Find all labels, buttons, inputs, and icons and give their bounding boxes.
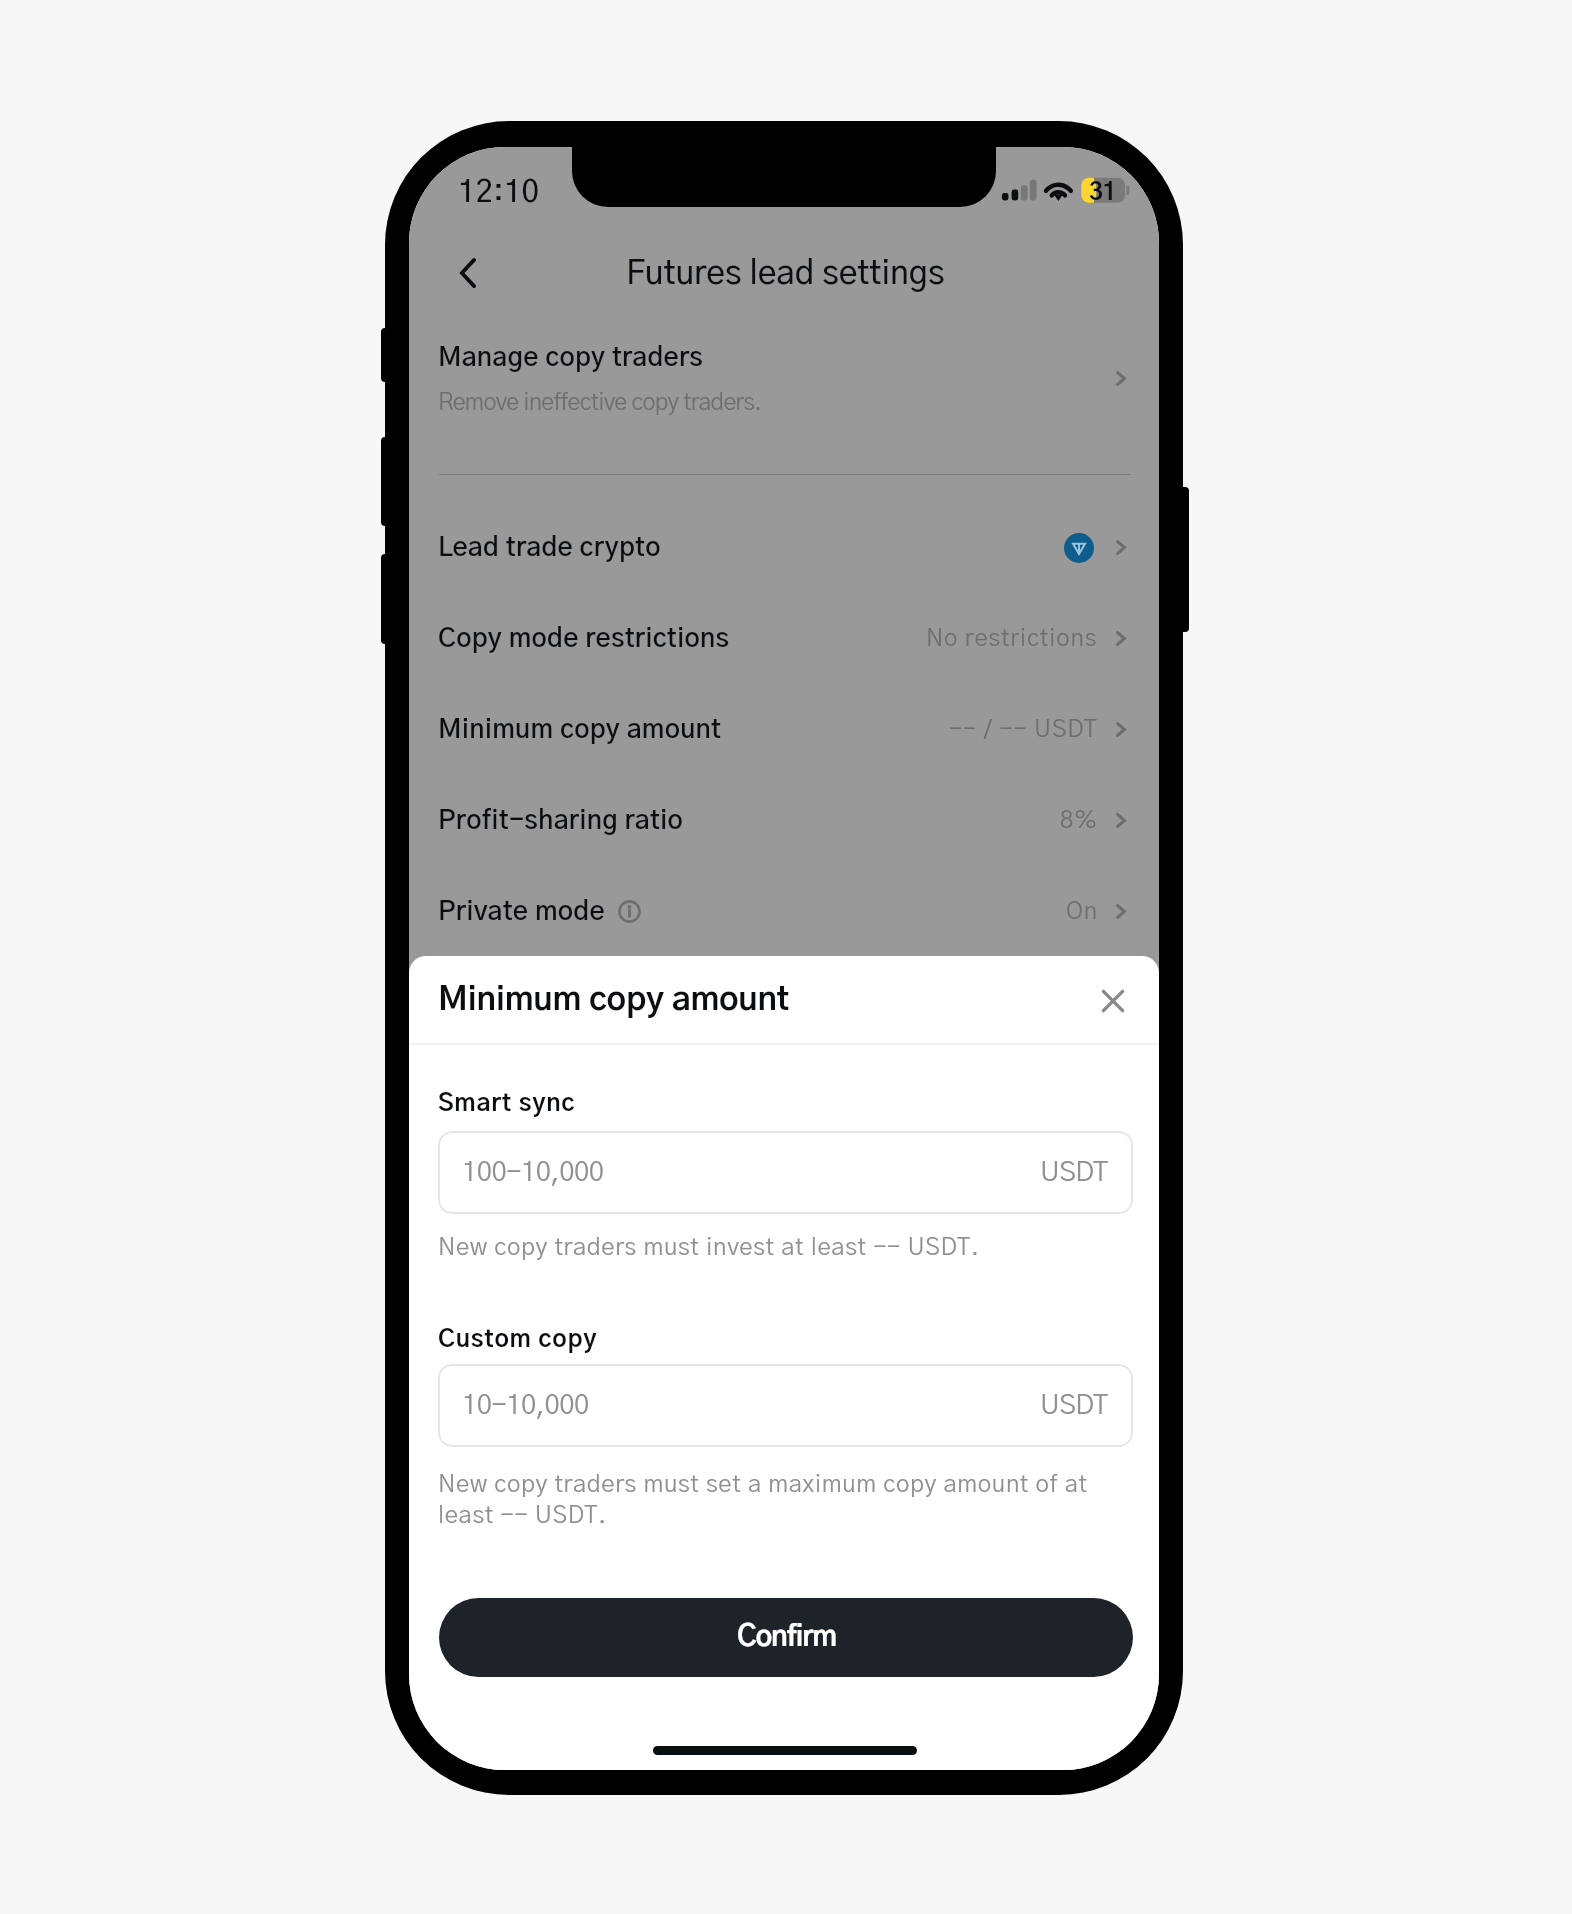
button[interactable]: 100-10,000 [438,1131,1133,1214]
staticText: New copy traders must set a maximum copy… [438,1473,1138,1528]
staticText: No restrictions [926,627,1098,651]
staticText: Custom copy [438,1327,598,1352]
staticText: USDT [1040,1159,1108,1187]
staticText: New copy traders must invest at least --… [438,1236,980,1260]
staticText: Lead trade crypto [438,535,661,561]
staticText: Futures lead settings [626,258,945,291]
staticText: Smart sync [438,1091,576,1116]
staticText: 8% [1060,809,1098,833]
staticText: 12:10 [458,177,540,208]
button[interactable]: Back [432,238,504,308]
button[interactable]: Profit-sharing ratio [410,775,1159,866]
staticText: On [1066,900,1098,924]
staticText: USDT [1040,1392,1108,1420]
staticText: -- / -- USDT [949,718,1098,742]
button[interactable]: Lead trade crypto [410,502,1159,593]
button[interactable]: Close [1085,973,1141,1029]
button[interactable]: Private mode [410,866,1159,957]
button[interactable]: Confirm [439,1598,1133,1677]
button[interactable]: Copy mode restrictions [410,593,1159,684]
staticText: Remove ineffective copy traders. [438,391,762,414]
button[interactable]: 10-10,000 [438,1364,1133,1447]
staticText: Manage copy traders [438,345,704,371]
staticText: 100-10,000 [462,1159,604,1187]
staticText: Confirm [737,1623,836,1652]
staticText: Minimum copy amount [438,717,722,743]
staticText: Private mode [438,899,605,925]
button[interactable]: Minimum copy amount [410,684,1159,775]
button[interactable]: Manage copy traders [410,329,1159,433]
staticText: Copy mode restrictions [438,626,730,652]
staticText: 10-10,000 [462,1392,589,1420]
staticText: 31 [1089,181,1116,205]
staticText: Minimum copy amount [438,984,790,1017]
staticText: Profit-sharing ratio [438,808,684,834]
